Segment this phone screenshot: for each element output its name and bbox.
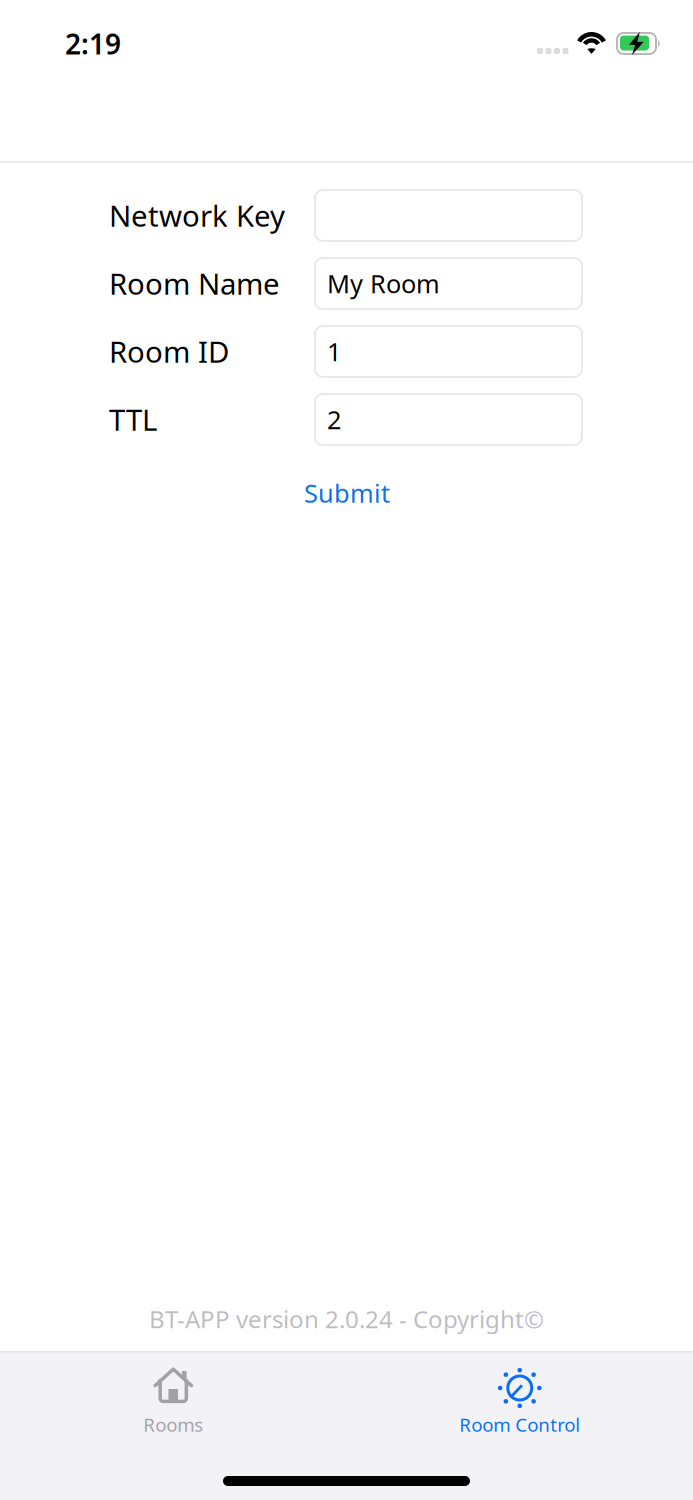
button[interactable]: 1 <box>315 326 582 377</box>
staticText: 2 <box>327 403 341 436</box>
button[interactable]: 2 <box>315 394 582 445</box>
button[interactable] <box>315 190 582 241</box>
staticText: Network Key <box>109 196 285 235</box>
staticText: 2:19 <box>65 25 121 62</box>
staticText: Room ID <box>109 332 229 371</box>
staticText: BT-APP version 2.0.24 - Copyright© <box>149 1303 544 1335</box>
staticText: 1 <box>327 335 341 368</box>
staticText: TTL <box>109 400 157 439</box>
staticText: Submit <box>304 476 390 510</box>
button[interactable]: Rooms <box>0 1351 346 1449</box>
button[interactable]: My Room <box>315 258 582 309</box>
staticText: Room Name <box>109 264 280 303</box>
staticText: Rooms <box>143 1412 203 1437</box>
button[interactable]: Submit <box>296 468 398 518</box>
button[interactable]: Room Control <box>346 1351 693 1449</box>
staticText: My Room <box>327 267 440 300</box>
staticText: Room Control <box>459 1412 580 1437</box>
